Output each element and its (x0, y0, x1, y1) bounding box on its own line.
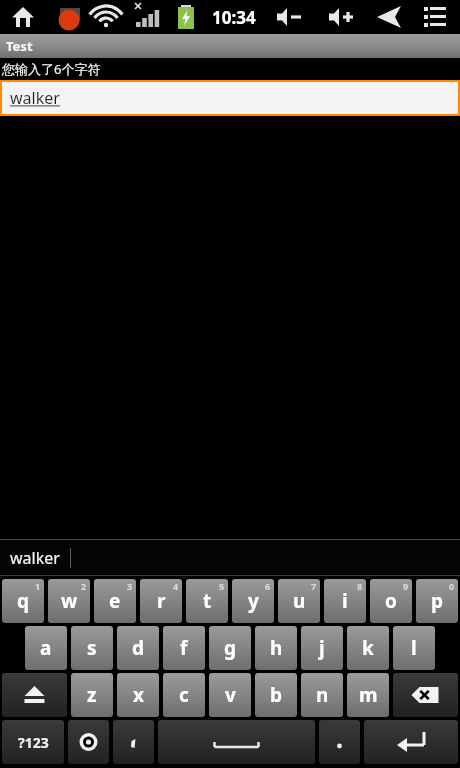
button[interactable]: t (186, 579, 228, 623)
button[interactable]: z (71, 673, 113, 717)
staticText: 0 (449, 580, 455, 592)
button[interactable]: g (209, 626, 251, 670)
button[interactable]: Shift (2, 673, 67, 717)
button[interactable]: q (2, 579, 44, 623)
staticText: e (109, 588, 121, 614)
button[interactable]: e (94, 579, 136, 623)
staticText: f (180, 635, 188, 661)
staticText: o (385, 588, 397, 614)
staticText: w (61, 588, 78, 614)
button[interactable]: c (163, 673, 205, 717)
staticText: 1 (35, 580, 41, 592)
staticText: t (203, 588, 212, 614)
staticText: k (362, 635, 374, 661)
button[interactable]: b (255, 673, 297, 717)
staticText: 10:34 (212, 6, 256, 29)
staticText: s (87, 635, 97, 661)
button[interactable]: l (393, 626, 435, 670)
button[interactable]: o (370, 579, 412, 623)
staticText: y (248, 588, 259, 614)
staticText: 9 (403, 580, 409, 592)
staticText: g (224, 635, 237, 661)
staticText: a (40, 635, 52, 661)
staticText: z (87, 682, 97, 708)
button[interactable]: f (163, 626, 205, 670)
button[interactable]: Period (319, 720, 360, 764)
staticText: 5 (219, 580, 225, 592)
staticText: 3 (127, 580, 133, 592)
staticText: d (132, 635, 145, 661)
staticText: walker (10, 547, 60, 569)
staticText: 6 (265, 580, 271, 592)
staticText: l (411, 635, 417, 661)
button[interactable]: Delete (393, 673, 458, 717)
button[interactable]: s (71, 626, 113, 670)
staticText: m (359, 682, 378, 708)
button[interactable]: x (117, 673, 159, 717)
staticText: n (316, 682, 329, 708)
button[interactable]: Input method (68, 720, 109, 764)
staticText: walker (10, 87, 60, 109)
staticText: 您输入了6个字符 (2, 60, 101, 78)
button[interactable]: j (301, 626, 343, 670)
button[interactable]: n (301, 673, 343, 717)
staticText: 8 (357, 580, 363, 592)
staticText: c (179, 682, 189, 708)
staticText: u (293, 588, 306, 614)
staticText: 2 (81, 580, 87, 592)
staticText: j (319, 635, 325, 661)
staticText: h (270, 635, 283, 661)
staticText: b (270, 682, 283, 708)
button[interactable]: walker (0, 540, 70, 575)
staticText: v (225, 682, 236, 708)
button[interactable]: d (117, 626, 159, 670)
staticText: x (133, 682, 144, 708)
staticText: 4 (173, 580, 179, 592)
staticText: i (342, 588, 348, 614)
button[interactable]: Space (158, 720, 315, 764)
button[interactable]: i (324, 579, 366, 623)
staticText: Test (6, 37, 33, 55)
button[interactable]: w (48, 579, 90, 623)
button[interactable]: ?123 (2, 720, 64, 764)
button[interactable]: v (209, 673, 251, 717)
button[interactable]: h (255, 626, 297, 670)
staticText: q (17, 588, 30, 614)
button[interactable]: a (25, 626, 67, 670)
staticText: r (157, 588, 166, 614)
staticText: 7 (311, 580, 317, 592)
button[interactable]: Enter (364, 720, 458, 764)
button[interactable]: y (232, 579, 274, 623)
button[interactable]: m (347, 673, 389, 717)
button[interactable]: p (416, 579, 458, 623)
button[interactable]: r (140, 579, 182, 623)
button[interactable]: k (347, 626, 389, 670)
staticText: p (431, 588, 444, 614)
button[interactable]: u (278, 579, 320, 623)
staticText: ?123 (18, 733, 49, 752)
button[interactable]: walker (2, 82, 458, 114)
button[interactable]: Comma (113, 720, 154, 764)
